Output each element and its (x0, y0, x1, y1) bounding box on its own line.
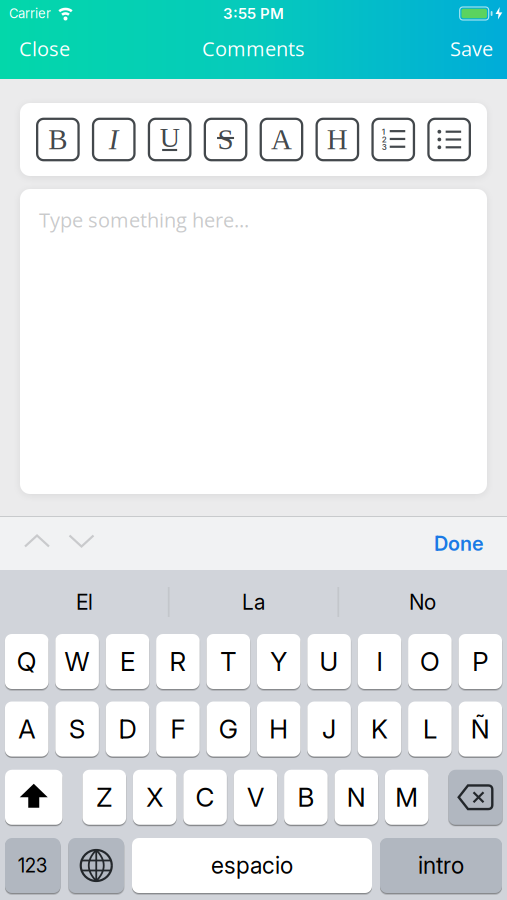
button[interactable]: Strikethrough (205, 119, 246, 160)
button[interactable]: A (5, 701, 48, 756)
staticText: U (160, 122, 180, 153)
staticText: O (420, 646, 440, 677)
button[interactable]: C (183, 770, 227, 825)
staticText: R (169, 646, 186, 677)
staticText: F (170, 714, 185, 744)
button[interactable]: No (338, 590, 507, 614)
button[interactable]: T (206, 634, 250, 689)
staticText: intro (418, 852, 464, 879)
staticText: T (220, 646, 236, 677)
staticText: Carrier (9, 6, 51, 21)
staticText: N (347, 782, 366, 813)
staticText: Type something here... (39, 206, 249, 233)
button[interactable]: espacio (132, 838, 372, 893)
button[interactable]: U (307, 634, 351, 689)
staticText: S (217, 123, 233, 155)
button[interactable]: Q (5, 634, 48, 689)
staticText: E (120, 646, 135, 677)
staticText: I (109, 123, 119, 155)
staticText: La (242, 590, 265, 614)
button[interactable]: Italic (93, 119, 134, 160)
button[interactable]: Save (450, 35, 507, 62)
staticText: M (395, 782, 418, 813)
staticText: J (322, 714, 336, 744)
staticText: W (65, 646, 90, 677)
staticText: espacio (211, 852, 293, 879)
staticText: G (219, 714, 238, 744)
button[interactable]: B (284, 770, 328, 825)
staticText: 3:55 PM (223, 5, 284, 22)
staticText: Close (19, 35, 70, 62)
staticText: P (472, 646, 488, 677)
button[interactable]: Done (434, 532, 507, 555)
button[interactable]: R (156, 634, 200, 689)
staticText: No (409, 590, 436, 614)
staticText: A (271, 123, 292, 155)
button[interactable]: H (257, 701, 300, 756)
button[interactable]: D (106, 701, 149, 756)
button[interactable]: Heading (317, 119, 358, 160)
staticText: X (146, 782, 163, 813)
button[interactable]: Previous field (0, 534, 50, 552)
staticText: H (269, 714, 288, 744)
staticText: Save (450, 35, 493, 62)
button[interactable]: Z (82, 770, 126, 825)
button[interactable]: Next keyboard (68, 838, 124, 893)
staticText: A (18, 714, 35, 744)
button[interactable]: K (358, 701, 401, 756)
button[interactable]: Numbered list (372, 119, 414, 160)
staticText: B (297, 782, 314, 813)
staticText: U (320, 646, 339, 677)
button[interactable]: Numbers (5, 838, 60, 893)
staticText: Q (17, 646, 37, 677)
staticText: S (69, 714, 85, 744)
button[interactable]: S (55, 701, 99, 756)
button[interactable]: Type something here... (20, 189, 487, 494)
staticText: Done (434, 532, 484, 555)
button[interactable]: E (106, 634, 149, 689)
button[interactable]: Close (0, 35, 70, 62)
staticText: Comments (202, 35, 305, 62)
button[interactable]: L (408, 701, 452, 756)
button[interactable]: Underline (149, 119, 190, 160)
staticText: L (423, 714, 437, 744)
button[interactable]: J (307, 701, 351, 756)
staticText: 2 (382, 135, 387, 144)
staticText: I (376, 646, 382, 677)
staticText: 3 (382, 142, 387, 152)
staticText: El (76, 590, 93, 614)
button[interactable]: Bold (37, 119, 79, 160)
button[interactable]: Text style (261, 119, 302, 160)
button[interactable]: Y (257, 634, 300, 689)
staticText: Z (96, 782, 112, 813)
staticText: 123 (18, 854, 48, 877)
staticText: D (118, 714, 136, 744)
button[interactable]: El (0, 590, 169, 614)
button[interactable]: N (334, 770, 378, 825)
staticText: C (196, 782, 215, 813)
staticText: V (247, 782, 264, 813)
button[interactable]: F (156, 701, 200, 756)
button[interactable]: O (408, 634, 452, 689)
button[interactable]: V (234, 770, 277, 825)
staticText: Y (270, 646, 287, 677)
button[interactable]: X (133, 770, 176, 825)
button[interactable]: Bulleted list (428, 119, 470, 160)
button[interactable]: W (55, 634, 99, 689)
staticText: Ñ (471, 714, 490, 744)
button[interactable]: I (358, 634, 401, 689)
button[interactable]: Shift (5, 770, 62, 825)
button[interactable]: Delete (448, 770, 502, 825)
button[interactable]: G (206, 701, 250, 756)
staticText: H (327, 123, 348, 155)
staticText: B (48, 123, 67, 155)
staticText: K (371, 714, 388, 744)
button[interactable]: La (169, 590, 338, 614)
button[interactable]: P (458, 634, 502, 689)
button[interactable]: Next field (50, 534, 94, 552)
button[interactable]: Ñ (458, 701, 502, 756)
staticText: 1 (382, 127, 385, 136)
button[interactable]: Return (380, 838, 502, 893)
button[interactable]: M (385, 770, 428, 825)
